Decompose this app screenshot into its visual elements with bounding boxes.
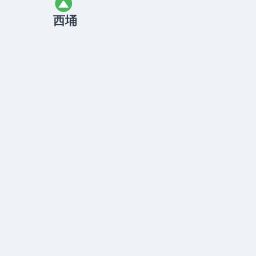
button[interactable]: 西埇 xyxy=(52,0,77,26)
staticText: 西埇 xyxy=(53,13,77,28)
